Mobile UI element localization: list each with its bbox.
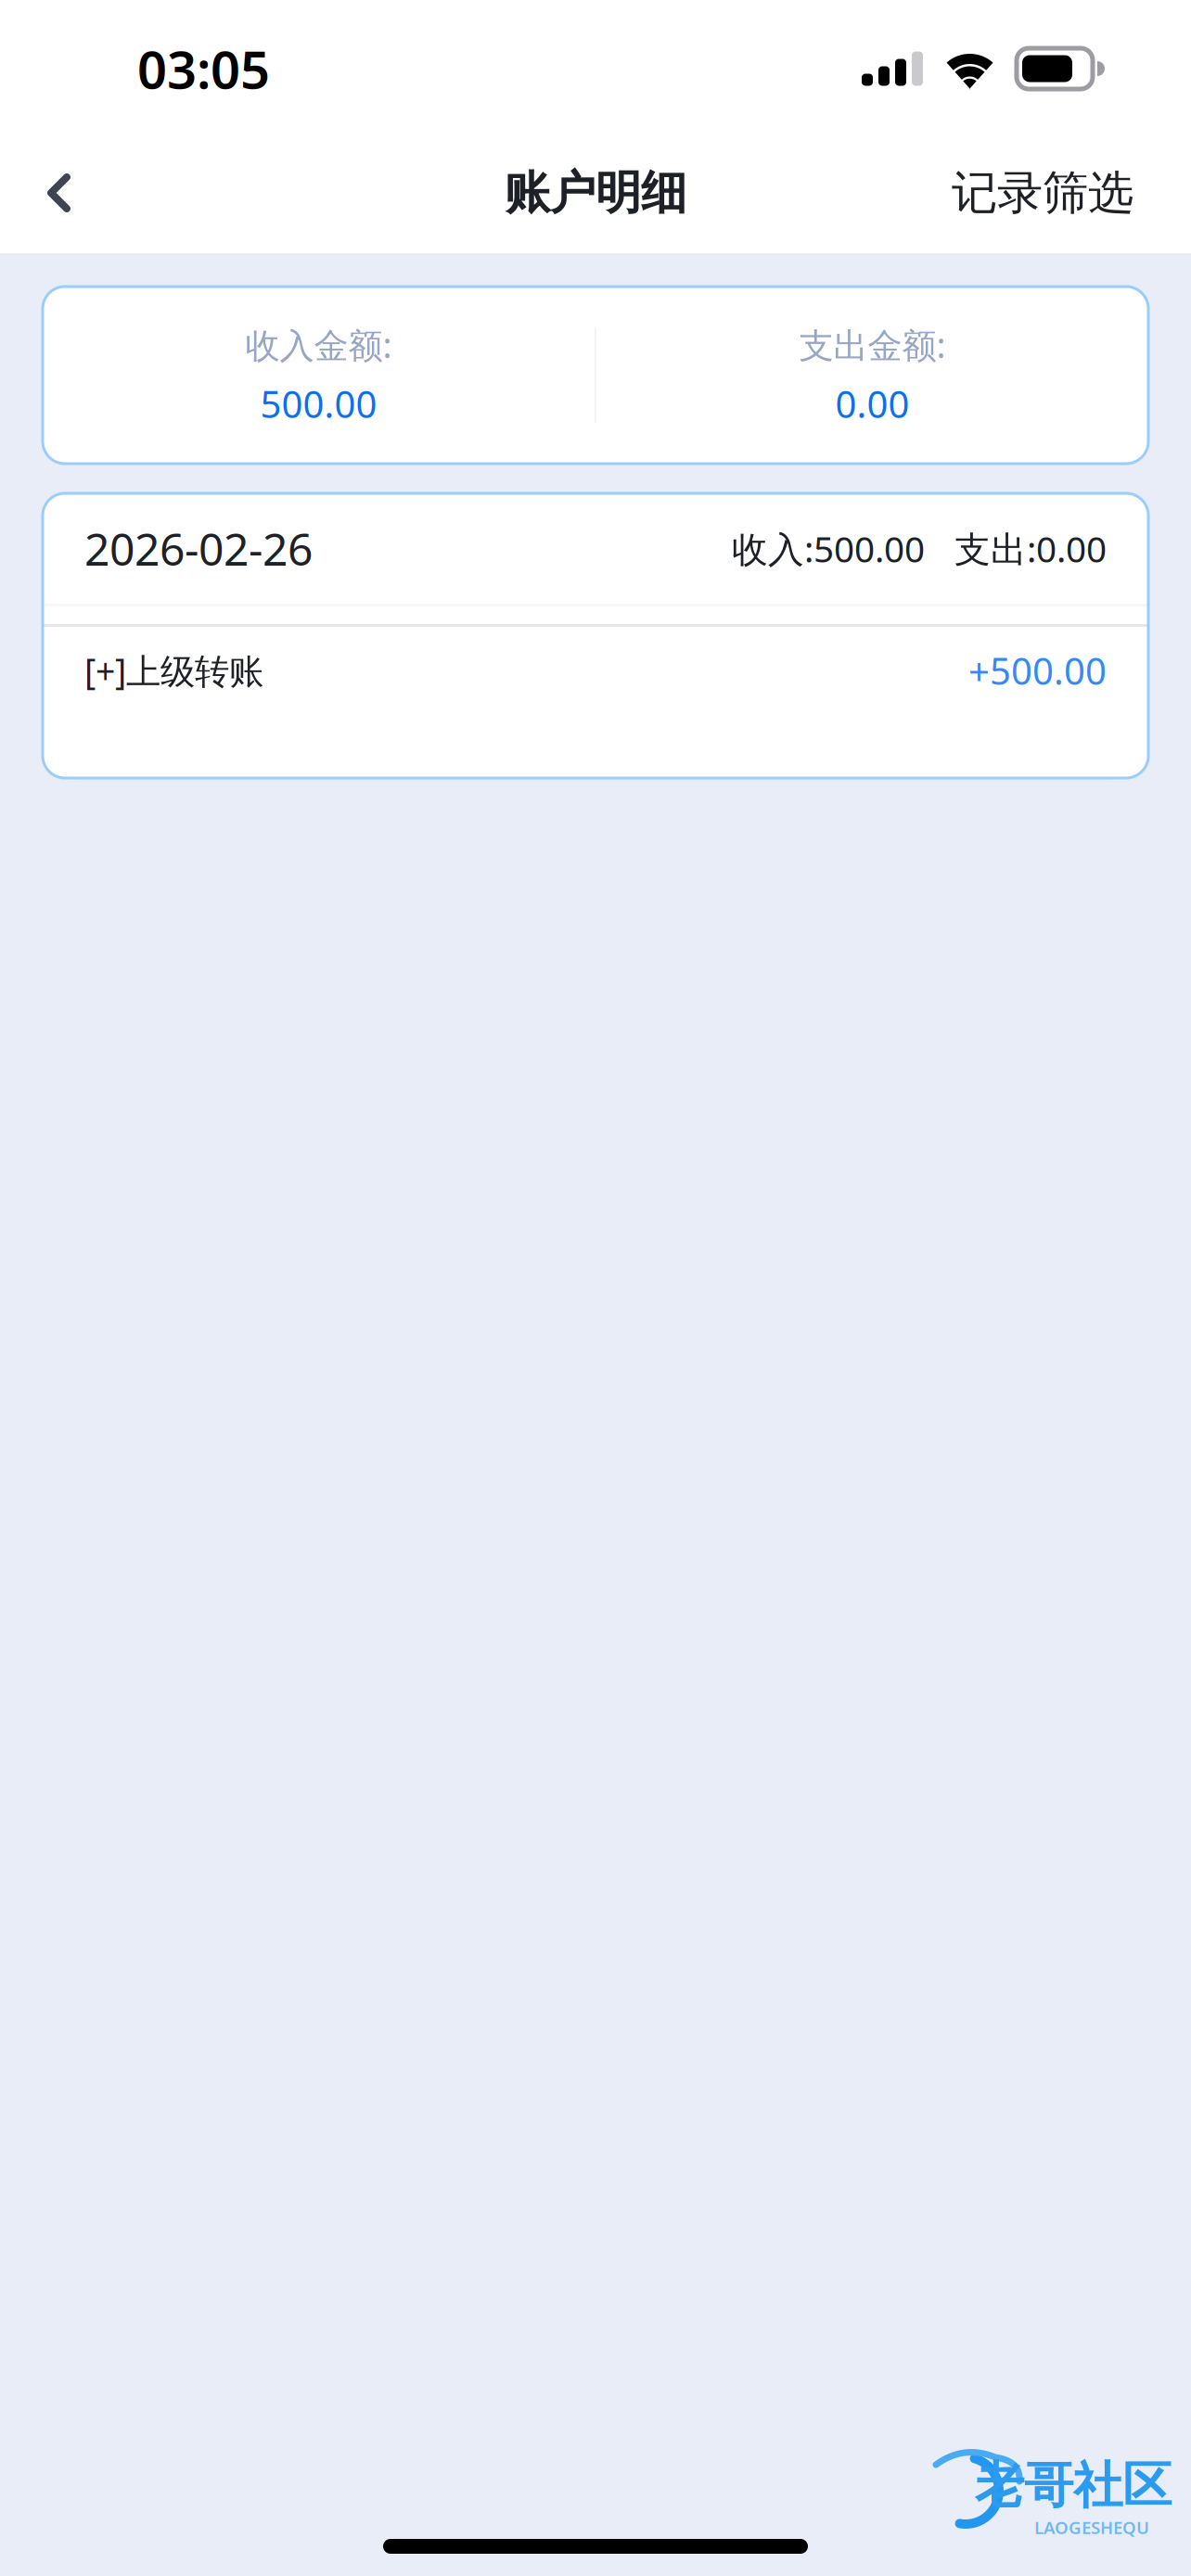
- button[interactable]: [+]上级转账: [43, 627, 1148, 714]
- button[interactable]: 返回: [0, 142, 135, 244]
- staticText: 03:05: [137, 34, 270, 103]
- staticText: LAOGESHEQU: [1034, 2516, 1149, 2539]
- staticText: 2026-02-26: [84, 519, 313, 578]
- staticText: 收入金额:: [245, 322, 392, 368]
- staticText: 收入:500.00: [732, 525, 925, 572]
- staticText: 500.00: [260, 379, 377, 428]
- staticText: 支出金额:: [799, 322, 946, 368]
- button[interactable]: 记录筛选: [952, 142, 1191, 244]
- staticText: +500.00: [968, 646, 1107, 695]
- staticText: 老哥社区: [975, 2455, 1172, 2516]
- staticText: 支出:0.00: [954, 525, 1107, 572]
- staticText: 记录筛选: [952, 165, 1133, 221]
- staticText: 账户明细: [505, 165, 686, 221]
- staticText: [+]上级转账: [84, 647, 263, 693]
- staticText: 0.00: [835, 379, 909, 428]
